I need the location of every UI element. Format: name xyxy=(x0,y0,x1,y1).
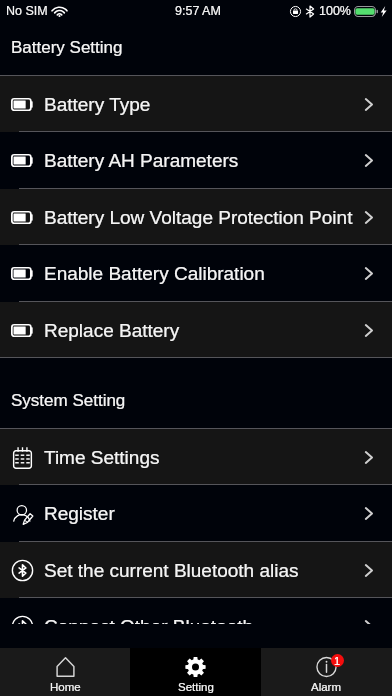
staticText: Alarm xyxy=(311,681,342,694)
button[interactable]: Replace Battery xyxy=(0,302,392,358)
button[interactable]: Battery AH Parameters xyxy=(0,132,392,188)
button[interactable]: Battery Low Voltage Protection Point xyxy=(0,189,392,245)
staticText: Enable Battery Calibration xyxy=(44,263,265,284)
button[interactable]: Set the current Bluetooth alias xyxy=(0,542,392,598)
button[interactable]: Enable Battery Calibration xyxy=(0,245,392,301)
button[interactable]: Setting xyxy=(130,648,261,696)
staticText: 9:57 AM xyxy=(175,4,221,18)
staticText: No SIM xyxy=(6,4,48,18)
staticText: 100% xyxy=(319,4,351,18)
staticText: Battery Setting xyxy=(11,38,123,57)
staticText: 1 xyxy=(334,655,341,667)
button[interactable]: Register xyxy=(0,485,392,541)
staticText: Replace Battery xyxy=(44,320,180,341)
button[interactable]: Time Settings xyxy=(0,429,392,485)
staticText: Set the current Bluetooth alias xyxy=(44,560,299,581)
staticText: Setting xyxy=(178,681,214,694)
staticText: Battery Type xyxy=(44,94,151,115)
button[interactable]: Battery Type xyxy=(0,76,392,132)
button[interactable]: Connect Other Bluetooth xyxy=(0,598,392,624)
staticText: Register xyxy=(44,503,115,524)
staticText: System Setting xyxy=(11,391,126,410)
staticText: Connect Other Bluetooth xyxy=(44,616,254,624)
staticText: Time Settings xyxy=(44,447,160,468)
staticText: Battery Low Voltage Protection Point xyxy=(44,207,353,228)
button[interactable]: 1 xyxy=(261,648,392,696)
staticText: Home xyxy=(50,681,81,694)
button[interactable]: Home xyxy=(0,648,130,696)
staticText: Battery AH Parameters xyxy=(44,150,239,171)
